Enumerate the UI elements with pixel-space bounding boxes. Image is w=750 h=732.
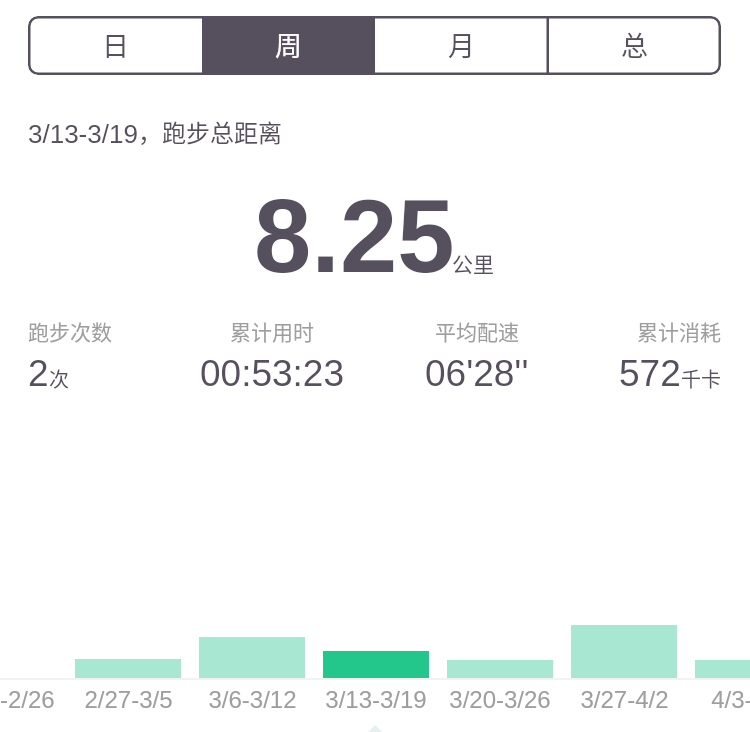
staticText: 572 [619, 353, 681, 394]
button[interactable]: 3/6-3/12 [162, 686, 342, 713]
button[interactable]: 4/3-4/9 [658, 686, 750, 713]
staticText: 日 [102, 25, 129, 64]
button[interactable]: 3/20-3/26 [410, 686, 590, 713]
button[interactable]: 2/20-2/26 [0, 686, 94, 713]
other: Weekly distance chart [0, 0, 750, 732]
staticText: 月 [448, 25, 475, 64]
staticText: 千卡 [681, 364, 721, 393]
staticText: 累计用时 [230, 316, 314, 346]
button[interactable]: 月 [375, 16, 548, 75]
button[interactable]: 周 [202, 16, 375, 75]
staticText: 4/3-4/9 [711, 686, 750, 713]
staticText: 2/27-3/5 [84, 686, 173, 713]
staticText: 次 [49, 364, 69, 393]
staticText: 2 [28, 353, 49, 394]
staticText: 公里 [452, 248, 494, 278]
staticText: 8.25 [254, 179, 455, 294]
staticText: 总 [621, 25, 648, 64]
staticText: 2/20-2/26 [0, 686, 55, 713]
staticText: 3/13-3/19 [28, 119, 138, 148]
staticText: 3/20-3/26 [449, 686, 551, 713]
staticText: 跑步次数 [28, 316, 112, 346]
staticText: 周 [275, 25, 302, 64]
button[interactable]: 总 [548, 16, 721, 75]
button[interactable]: 2/27-3/5 [38, 686, 218, 713]
staticText: 3/13-3/19 [325, 686, 427, 713]
staticText: 累计消耗 [637, 316, 721, 346]
button[interactable]: 3/27-4/2 [534, 686, 714, 713]
staticText: 06'28'' [425, 353, 529, 394]
staticText: 00:53:23 [200, 353, 345, 394]
staticText: 3/6-3/12 [208, 686, 297, 713]
staticText: 3/27-4/2 [580, 686, 669, 713]
button[interactable]: 3/13-3/19 [286, 686, 466, 713]
staticText: 平均配速 [435, 316, 519, 346]
staticText: ，跑步总距离 [138, 114, 282, 149]
button[interactable]: 日 [28, 16, 202, 75]
